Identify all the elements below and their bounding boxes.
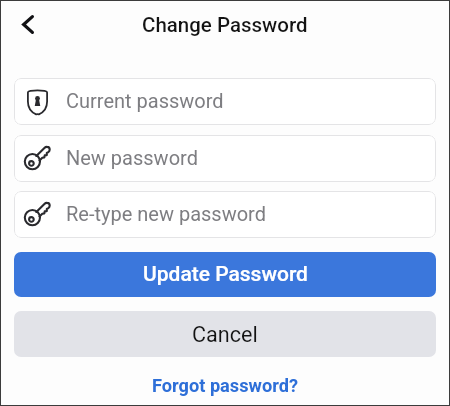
staticText: Current password: [66, 89, 224, 112]
button[interactable]: Back: [8, 4, 48, 44]
button[interactable]: Update Password: [14, 252, 436, 297]
staticText: Change Password: [142, 13, 308, 37]
button[interactable]: Current password: [14, 78, 436, 125]
staticText: Update Password: [143, 262, 308, 287]
button[interactable]: Re-type new password: [14, 191, 436, 238]
staticText: Cancel: [192, 322, 258, 347]
button[interactable]: New password: [14, 135, 436, 182]
staticText: Re-type new password: [66, 202, 266, 225]
button[interactable]: Forgot password?: [148, 371, 302, 400]
staticText: New password: [66, 146, 198, 169]
button[interactable]: Cancel: [14, 311, 436, 357]
